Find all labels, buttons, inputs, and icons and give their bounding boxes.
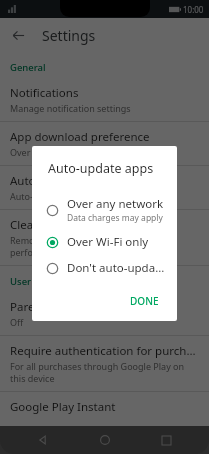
staticText: Remove all the searches you have perform…: [10, 234, 199, 258]
button[interactable]: Clear local search history: [0, 210, 209, 265]
button[interactable]: Over Wi-Fi only: [32, 229, 177, 255]
button[interactable]: Home: [92, 427, 118, 453]
staticText: Over Wi-Fi only: [67, 234, 149, 250]
staticText: Auto-update apps: [10, 173, 107, 189]
button[interactable]: Require authentication for purchases: [0, 336, 209, 391]
staticText: Parental controls: [10, 299, 102, 315]
staticText: Manage notification settings: [10, 102, 131, 114]
staticText: Google Play Instant: [10, 399, 116, 415]
staticText: Data charges may apply: [67, 212, 163, 224]
button[interactable]: DONE: [122, 289, 167, 313]
button[interactable]: App download preference: [0, 122, 209, 165]
staticText: Notifications: [10, 85, 79, 101]
staticText: DONE: [130, 294, 159, 308]
button[interactable]: Don't auto-update apps: [32, 255, 177, 281]
button[interactable]: Back: [6, 23, 30, 47]
staticText: For all purchases through Google Play on…: [10, 360, 199, 384]
staticText: App download preference: [10, 129, 150, 145]
staticText: Auto-update apps over Wi-Fi only: [10, 190, 150, 202]
staticText: Clear local search history: [10, 217, 145, 233]
button[interactable]: Back: [30, 427, 56, 453]
staticText: 10:00: [183, 4, 204, 15]
staticText: Off: [10, 316, 24, 328]
button[interactable]: Auto-update apps: [0, 166, 209, 209]
staticText: General: [10, 61, 46, 74]
button[interactable]: Google Play Instant: [0, 392, 209, 426]
staticText: Settings: [42, 26, 96, 45]
staticText: Over any network: [67, 196, 164, 212]
button[interactable]: Notifications: [0, 78, 209, 121]
button[interactable]: Over any network: [32, 191, 177, 229]
staticText: Don't auto-update apps: [67, 260, 167, 276]
staticText: Require authentication for purchases: [10, 343, 199, 359]
staticText: Over any network: [10, 146, 86, 158]
staticText: User controls: [10, 275, 71, 288]
staticText: Auto-update apps: [48, 160, 154, 177]
button[interactable]: Parental controls: [0, 292, 209, 335]
button[interactable]: Recent apps: [153, 427, 179, 453]
